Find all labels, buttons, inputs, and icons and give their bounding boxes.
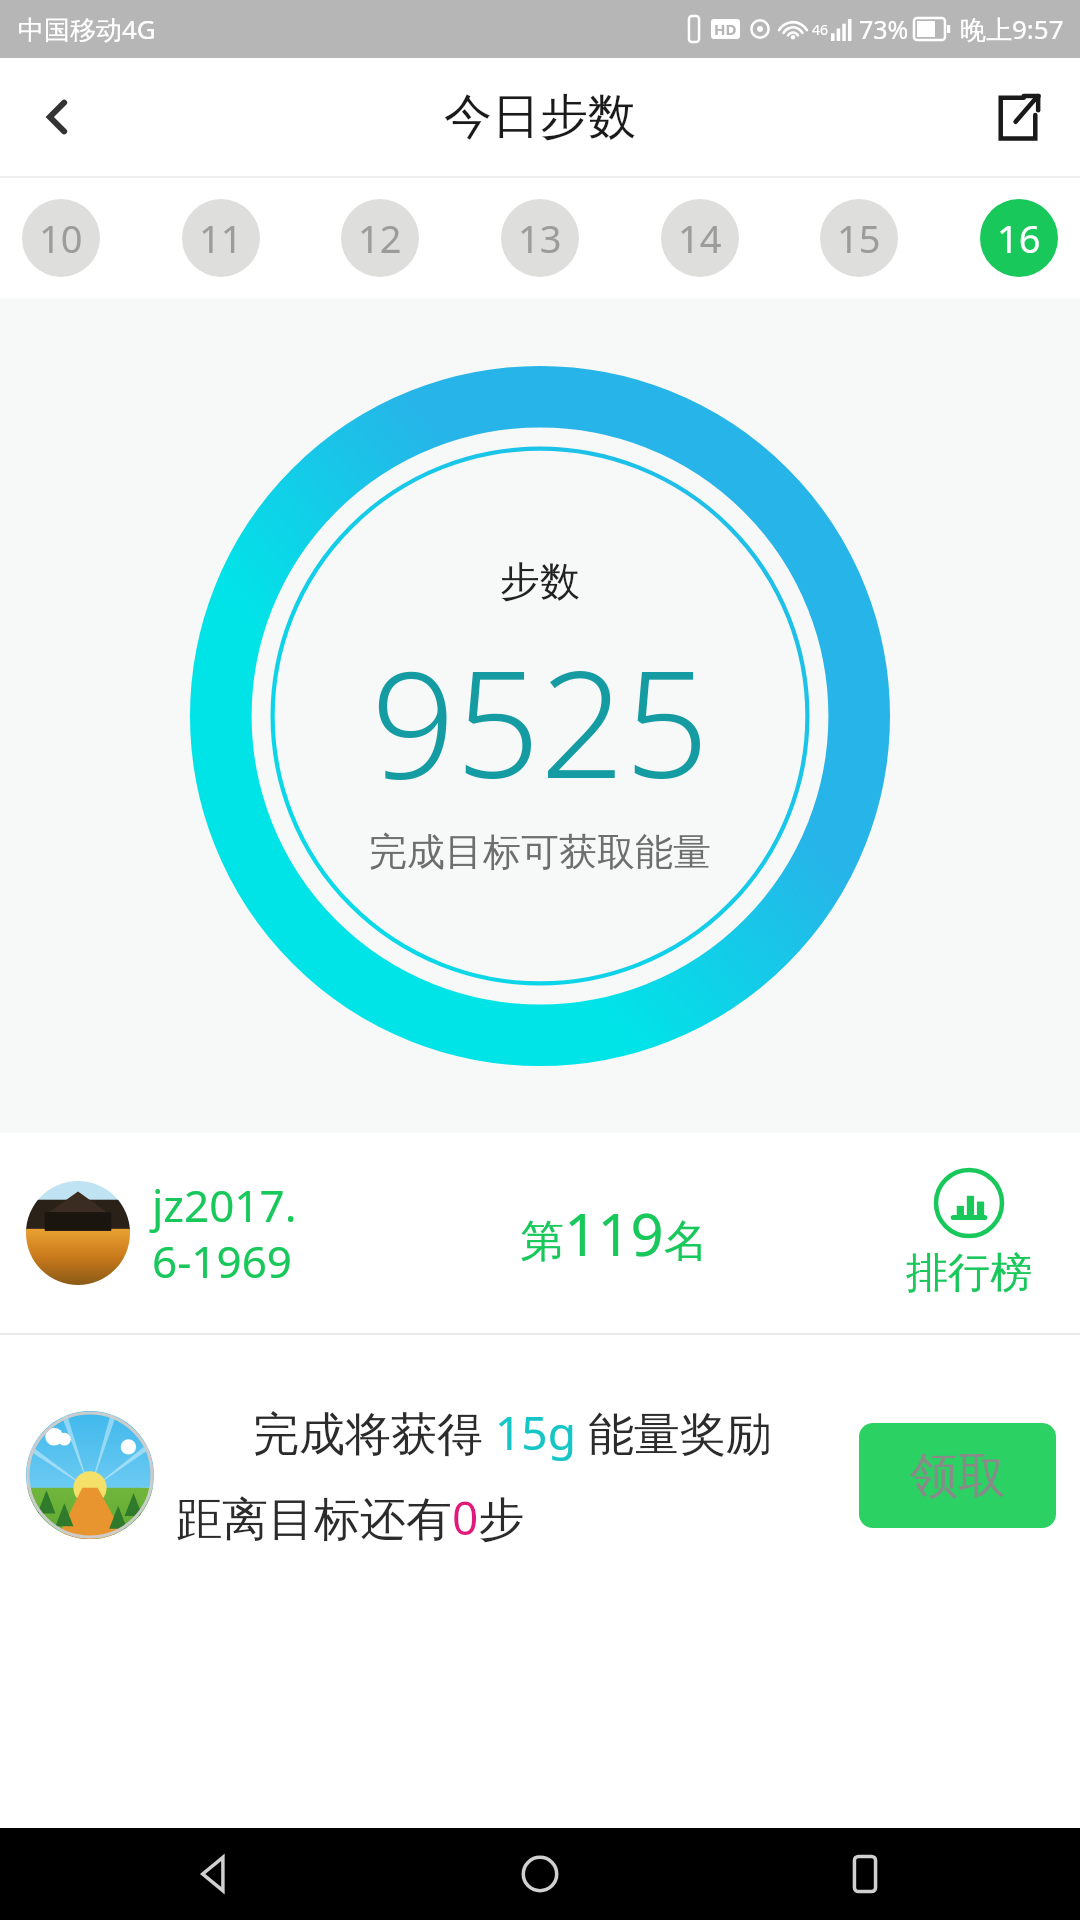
button[interactable]: Back (18, 77, 98, 157)
staticText: 领取 (910, 1446, 1006, 1506)
button[interactable]: 13 (501, 199, 579, 277)
staticText: 第119名 (520, 1194, 708, 1273)
button[interactable]: 排行榜 (884, 1167, 1054, 1300)
button[interactable]: Recents (830, 1839, 900, 1909)
staticText: 46 (812, 20, 829, 39)
staticText: 完成将获得 15g 能量奖励 (176, 1401, 849, 1464)
staticText: 中国移动4G (18, 11, 156, 47)
staticText: 14 (678, 212, 722, 264)
button[interactable]: 11 (182, 199, 260, 277)
button[interactable]: Home (505, 1839, 575, 1909)
staticText: 11 (199, 212, 243, 264)
staticText: 距离目标还有0步 (176, 1486, 525, 1549)
staticText: 13 (518, 212, 562, 264)
button[interactable]: 14 (661, 199, 739, 277)
staticText: 排行榜 (906, 1247, 1032, 1300)
staticText: jz2017.6-1969 (152, 1175, 307, 1291)
button[interactable]: Share (978, 77, 1058, 157)
button[interactable]: jz2017.6-1969 (0, 1133, 1080, 1333)
button[interactable]: 15 (820, 199, 898, 277)
staticText: 73% (859, 12, 909, 46)
button[interactable]: 领取 (859, 1423, 1056, 1528)
button[interactable]: 10 (22, 199, 100, 277)
staticText: 9525 (371, 620, 710, 822)
button[interactable]: Back (180, 1839, 250, 1909)
button[interactable]: 16 (980, 199, 1058, 277)
staticText: 晚上9:57 (960, 11, 1064, 47)
staticText: 步数 (500, 556, 580, 606)
staticText: 12 (358, 212, 402, 264)
staticText: 16 (997, 212, 1041, 264)
staticText: 完成目标可获取能量 (369, 828, 711, 876)
button[interactable]: 12 (341, 199, 419, 277)
staticText: 今日步数 (444, 87, 636, 147)
staticText: 15 (837, 212, 881, 264)
staticText: HD (714, 19, 737, 39)
staticText: 10 (39, 212, 83, 264)
